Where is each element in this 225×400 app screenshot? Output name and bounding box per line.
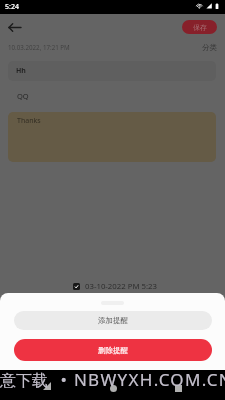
button[interactable]: Recents — [173, 383, 183, 393]
button[interactable]: Back — [42, 381, 52, 391]
button[interactable]: 保存 — [182, 20, 217, 34]
button[interactable]: Reminder checkbox — [73, 283, 80, 290]
staticText: QQ — [17, 91, 29, 101]
button[interactable]: Hh — [8, 61, 216, 81]
button[interactable]: Back — [4, 17, 24, 37]
staticText: 添加提醒 — [98, 316, 128, 325]
button[interactable]: 删除提醒 — [14, 339, 212, 361]
staticText: Hh — [16, 66, 26, 76]
staticText: Thanks — [17, 116, 41, 126]
staticText: 10.03.2022, 17:21 PM — [8, 43, 70, 51]
button[interactable]: 添加提醒 — [14, 311, 212, 330]
staticText: 保存 — [193, 23, 207, 32]
staticText: 03-10-2022 PM 5:23 — [85, 281, 158, 292]
staticText: 删除提醒 — [98, 346, 128, 355]
button[interactable]: Home — [108, 383, 118, 393]
staticText: 5:24 — [5, 2, 19, 12]
staticText: 意下载 • NBWYXH.COM.CN — [0, 368, 225, 390]
button[interactable]: 分类 — [202, 43, 217, 52]
